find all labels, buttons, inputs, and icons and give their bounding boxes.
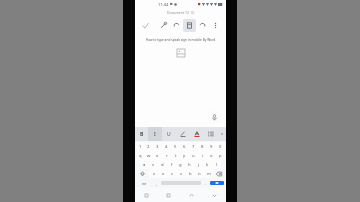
staticText: 4 (165, 144, 168, 150)
button[interactable]: 2 (144, 142, 153, 151)
button[interactable]: 6 (180, 142, 189, 151)
button[interactable]: Bulleted list (204, 127, 218, 141)
button[interactable]: Format (183, 19, 196, 32)
staticText: U (167, 131, 171, 138)
button[interactable]: e (153, 151, 162, 160)
button[interactable]: 8 (198, 142, 207, 151)
staticText: m (207, 171, 211, 177)
button[interactable]: 4 (162, 142, 171, 151)
button[interactable]: t (171, 151, 180, 160)
staticText: x (162, 171, 165, 177)
staticText: s (152, 162, 155, 168)
staticText: 3 (156, 144, 159, 150)
button[interactable]: Comma (153, 179, 160, 187)
button[interactable]: d (158, 160, 167, 169)
staticText: k (206, 162, 209, 168)
button[interactable]: w (144, 151, 153, 160)
button[interactable]: 9 (207, 142, 216, 151)
staticText: 2 (147, 144, 150, 150)
button[interactable]: 5 (171, 142, 180, 151)
button[interactable]: Switch language (136, 179, 153, 187)
staticText: Document 12 (167, 10, 190, 15)
staticText: r (166, 153, 168, 159)
button[interactable]: More options (209, 19, 222, 32)
button[interactable]: y (180, 151, 189, 160)
staticText: p (219, 153, 222, 159)
button[interactable]: Dictate (207, 110, 221, 124)
button[interactable]: b (186, 169, 195, 178)
button[interactable]: 1 (136, 142, 144, 151)
button[interactable]: o (207, 151, 216, 160)
button[interactable]: k (203, 160, 212, 169)
staticText: l (216, 162, 218, 168)
staticText: d (161, 162, 164, 168)
staticText: h (188, 162, 191, 168)
staticText: i (202, 153, 204, 159)
button[interactable]: g (176, 160, 185, 169)
staticText: I (154, 131, 156, 138)
button[interactable]: Undo (170, 19, 183, 32)
button[interactable]: Done (139, 19, 152, 32)
staticText: g (179, 162, 182, 168)
button[interactable]: Redo (196, 19, 209, 32)
button[interactable]: j (194, 160, 203, 169)
button[interactable]: f (167, 160, 176, 169)
button[interactable]: i (198, 151, 207, 160)
button[interactable]: Text color (190, 127, 204, 141)
staticText: y (183, 153, 186, 159)
staticText: 7 (192, 144, 195, 150)
button[interactable]: Add comment (157, 19, 170, 32)
button[interactable]: Period (202, 179, 209, 187)
staticText: e (156, 153, 159, 159)
staticText: 11:44 (158, 2, 169, 7)
button[interactable]: 7 (189, 142, 198, 151)
staticText: z (153, 171, 155, 177)
staticText: B (140, 131, 144, 138)
button[interactable]: c (168, 169, 177, 178)
button[interactable]: l (212, 160, 221, 169)
staticText: v (180, 171, 183, 177)
staticText: 0 (219, 144, 222, 150)
button[interactable]: 3 (153, 142, 162, 151)
button[interactable]: Shift (136, 169, 149, 178)
button[interactable]: m (204, 169, 213, 178)
staticText: 5 (174, 144, 177, 150)
staticText: n (198, 171, 201, 177)
staticText: t (175, 153, 177, 159)
button[interactable]: Back (180, 188, 203, 202)
staticText: How to type and speak sign in mobile By … (140, 38, 221, 42)
button[interactable]: Backspace (213, 169, 225, 178)
button[interactable]: Underline (162, 127, 176, 141)
button[interactable]: Home (157, 188, 180, 202)
button[interactable]: p (216, 151, 225, 160)
staticText: c (171, 171, 174, 177)
staticText: b (189, 171, 192, 177)
staticText: 8 (201, 144, 204, 150)
staticText: w (147, 153, 151, 159)
button[interactable]: Italic (148, 127, 162, 141)
button[interactable]: Recents (135, 188, 157, 202)
staticText: 6 (183, 144, 186, 150)
staticText: j (198, 162, 200, 168)
button[interactable]: Hide keyboard (203, 188, 226, 202)
button[interactable]: x (159, 169, 168, 178)
button[interactable]: v (177, 169, 186, 178)
button[interactable]: z (149, 169, 159, 178)
button[interactable]: a (140, 160, 149, 169)
button[interactable]: 0 (216, 142, 225, 151)
staticText: o (210, 153, 213, 159)
button[interactable]: Enter (210, 181, 224, 185)
button[interactable]: u (189, 151, 198, 160)
staticText: , (156, 181, 158, 186)
button[interactable]: n (195, 169, 204, 178)
button[interactable]: s (149, 160, 158, 169)
staticText: a (143, 162, 146, 168)
button[interactable]: More formatting (218, 127, 226, 141)
button[interactable]: Bold (135, 127, 148, 141)
staticText: . (205, 181, 207, 186)
button[interactable]: r (162, 151, 171, 160)
button[interactable]: h (185, 160, 194, 169)
button[interactable]: Highlight (176, 127, 190, 141)
button[interactable]: q (136, 151, 144, 160)
